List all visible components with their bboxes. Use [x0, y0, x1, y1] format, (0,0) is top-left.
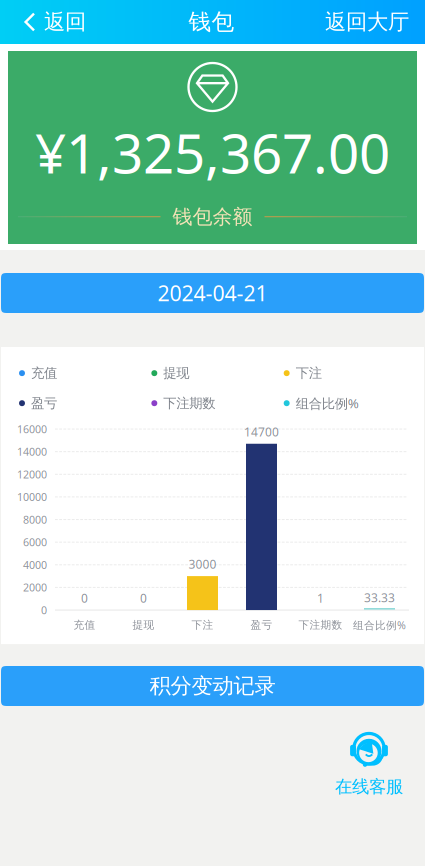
staticText: 组合比例%	[353, 618, 406, 632]
staticText: ¥1,325,367.00	[35, 116, 390, 189]
staticText: 2000	[23, 580, 47, 594]
staticText: 3000	[188, 556, 216, 572]
staticText: 在线客服	[335, 776, 403, 797]
staticText: 6000	[23, 535, 47, 549]
staticText: 12000	[17, 467, 47, 481]
staticText: 8000	[23, 512, 47, 527]
staticText: 积分变动记录	[149, 673, 275, 699]
staticText: 盈亏	[31, 395, 57, 411]
staticText: 4000	[23, 558, 47, 572]
staticText: 10000	[17, 490, 47, 504]
staticText: 下注	[191, 618, 213, 632]
staticText: 0	[41, 603, 47, 617]
staticText: 提现	[163, 365, 189, 381]
staticText: 0	[81, 590, 88, 606]
staticText: 0	[140, 590, 147, 606]
staticText: 盈亏	[250, 618, 272, 632]
staticText: 下注期数	[298, 618, 342, 632]
button[interactable]: 在线客服	[335, 731, 425, 797]
button[interactable]: 积分变动记录	[1, 666, 424, 706]
staticText: 提现	[132, 618, 154, 632]
staticText: 14700	[244, 424, 279, 440]
button[interactable]: 返回	[0, 0, 98, 44]
staticText: 14000	[17, 445, 47, 459]
staticText: 16000	[17, 422, 47, 436]
staticText: 返回大厅	[325, 9, 409, 35]
staticText: 充值	[31, 365, 57, 381]
staticText: 钱包余额	[172, 204, 252, 229]
staticText: 下注期数	[163, 395, 215, 411]
staticText: 33.33	[364, 590, 395, 606]
staticText: 返回	[44, 9, 86, 35]
staticText: 钱包	[188, 8, 234, 36]
button[interactable]: 2024-04-21	[1, 273, 424, 313]
button[interactable]: 返回大厅	[325, 0, 425, 44]
staticText: 充值	[73, 618, 95, 632]
staticText: 下注	[296, 365, 322, 381]
staticText: 组合比例%	[296, 394, 359, 412]
staticText: 2024-04-21	[157, 279, 267, 307]
staticText: 1	[317, 590, 324, 606]
